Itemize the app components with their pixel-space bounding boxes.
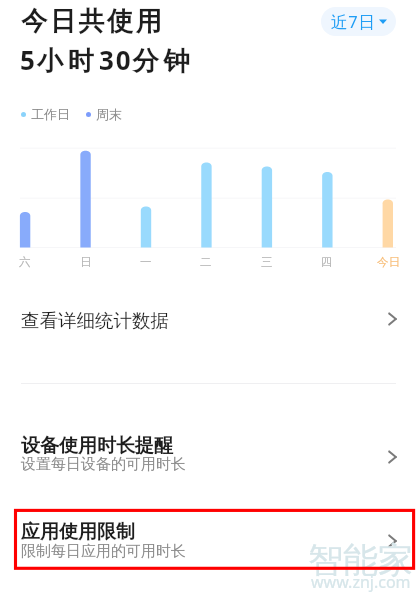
staticText: 三: [261, 255, 273, 269]
staticText: 日: [80, 255, 92, 269]
staticText: 设置每日设备的可用时长: [21, 455, 186, 474]
staticText: www.znj.com: [311, 571, 411, 593]
other: 查看详细统计数据: [388, 312, 398, 326]
staticText: 限制每日应用的可用时长: [21, 542, 186, 561]
other: 应用使用限制: [388, 534, 398, 548]
staticText: 四: [321, 255, 333, 269]
staticText: 六: [19, 255, 31, 269]
button[interactable]: [0, 425, 420, 483]
staticText: 查看详细统计数据: [21, 309, 169, 332]
button[interactable]: [0, 296, 420, 342]
other: 设备使用时长提醒: [388, 450, 398, 464]
staticText: 今日: [377, 255, 400, 269]
staticText: 智能家: [308, 538, 413, 582]
button[interactable]: [0, 511, 420, 569]
staticText: 近7日: [331, 10, 376, 33]
staticText: 应用使用限制: [21, 520, 135, 544]
staticText: 二: [200, 255, 212, 269]
staticText: 5小时30分钟: [20, 42, 195, 78]
staticText: 工作日: [31, 106, 70, 122]
staticText: 设备使用时长提醒: [21, 434, 173, 458]
staticText: 周末: [96, 106, 122, 122]
button[interactable]: 近7日: [321, 7, 396, 36]
staticText: 一: [140, 255, 152, 269]
staticText: 今日共使用: [20, 5, 163, 38]
